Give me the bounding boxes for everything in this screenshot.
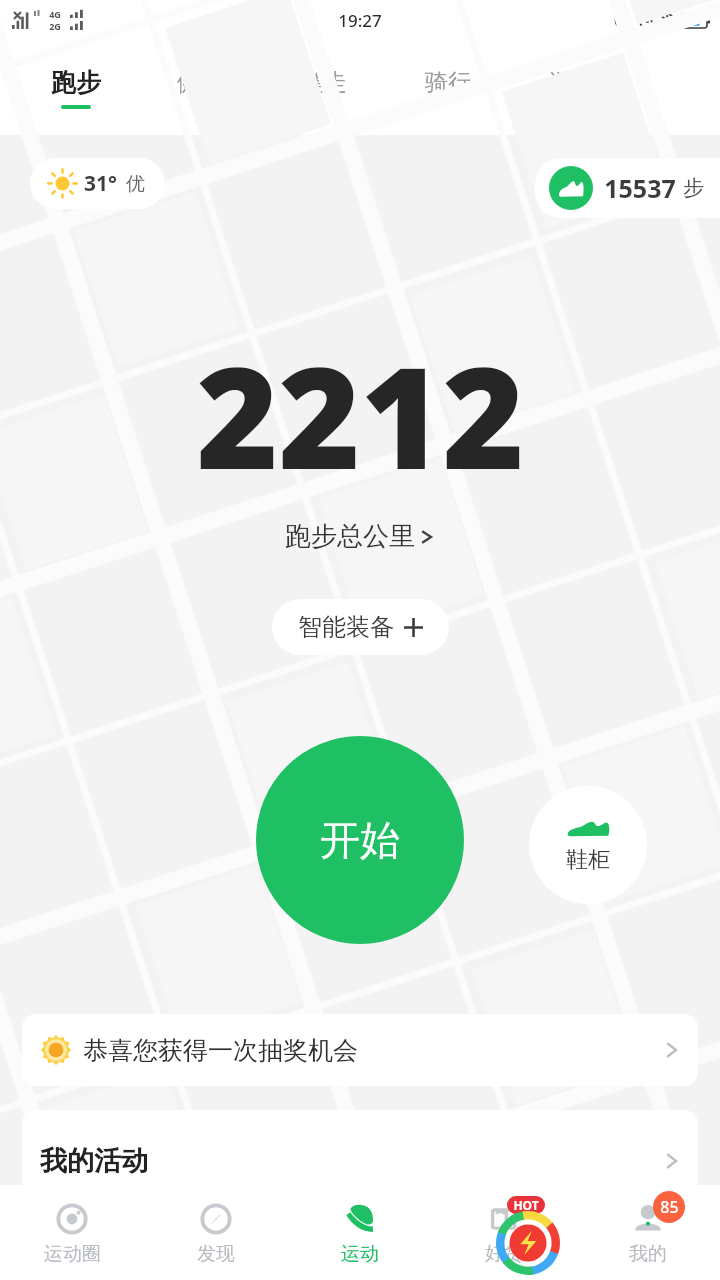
staticText: 鞋柜 (566, 846, 610, 874)
button[interactable]: 骑行 (386, 40, 510, 135)
staticText: 发现 (197, 1242, 235, 1266)
button[interactable]: 31° (30, 158, 165, 209)
staticText: 31° (84, 169, 117, 198)
staticText: 4G (49, 8, 61, 20)
button[interactable]: HOT (432, 1185, 576, 1280)
staticText: 恭喜您获得一次抽奖机会 (83, 1035, 358, 1066)
staticText: 游泳 (549, 68, 595, 97)
staticText: 步 (683, 175, 704, 201)
staticText: 运动圈 (44, 1242, 101, 1266)
button[interactable]: 恭喜您获得一次抽奖机会 (22, 1014, 698, 1086)
staticText: 我的 (629, 1242, 667, 1266)
button[interactable]: 15537 (535, 158, 720, 218)
button[interactable]: 智能装备 (272, 599, 449, 655)
staticText: 健走 (301, 68, 347, 97)
button[interactable]: 开始 (256, 736, 464, 944)
staticText: 优 (126, 172, 145, 196)
button[interactable]: 运动 (288, 1185, 432, 1280)
staticText: 我的活动 (40, 1144, 148, 1178)
staticText: HOT (513, 1197, 539, 1213)
staticText: 开始 (320, 815, 400, 865)
staticText: 85 (660, 1196, 679, 1218)
button[interactable]: 健走 (262, 40, 386, 135)
staticText: 跑步 (51, 67, 101, 98)
button[interactable]: 游泳 (510, 40, 634, 135)
button[interactable]: 鞋柜 (529, 786, 647, 904)
staticText: 骑行 (425, 68, 471, 97)
staticText: 19:27 (338, 9, 382, 32)
button[interactable]: 健身 (138, 40, 262, 135)
button[interactable]: 跑步总公里 (275, 516, 445, 557)
button[interactable]: 85 (576, 1185, 720, 1280)
button[interactable]: 跑步 (14, 40, 138, 135)
button[interactable]: 活动入口 (496, 1211, 560, 1275)
button[interactable]: 运动圈 (0, 1185, 144, 1280)
staticText: 2212 (196, 319, 525, 510)
staticText: 2G (49, 20, 61, 32)
staticText: 好货 (485, 1242, 523, 1266)
staticText: 运动 (341, 1242, 379, 1266)
staticText: 智能装备 (298, 612, 394, 642)
staticText: 15537 (604, 171, 676, 205)
button[interactable]: 发现 (144, 1185, 288, 1280)
button[interactable]: 我的活动 (22, 1110, 698, 1200)
staticText: 健身 (177, 68, 223, 97)
staticText: 跑步总公里 (285, 520, 415, 553)
